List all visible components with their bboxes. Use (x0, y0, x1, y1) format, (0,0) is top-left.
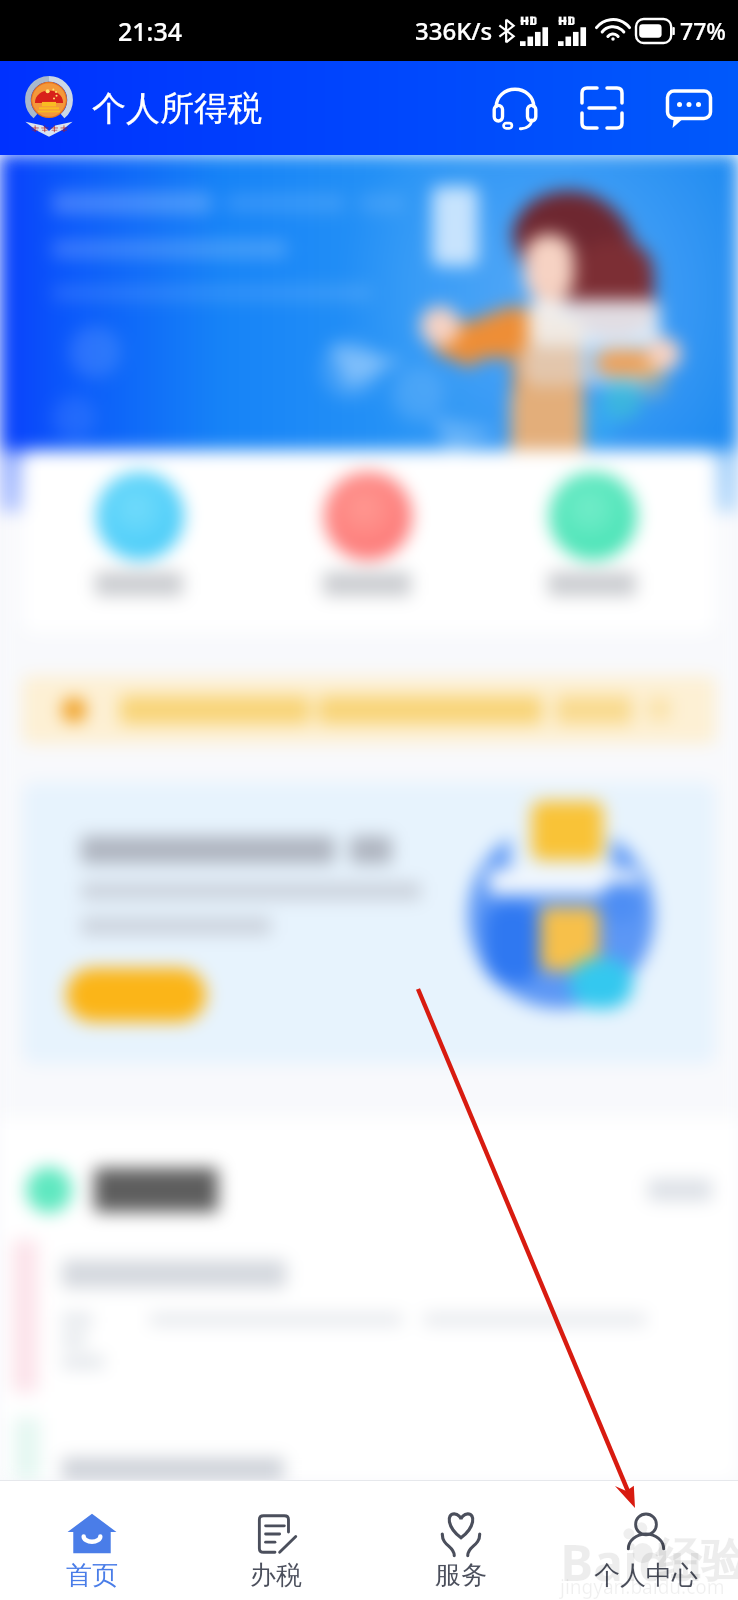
button[interactable]: 首页 (0, 1483, 184, 1598)
button[interactable]: 个人中心 (553, 1483, 738, 1598)
staticText: 个人所得税 (92, 87, 262, 130)
staticText: 办税 (250, 1559, 302, 1592)
staticText: 336K/s (415, 14, 493, 47)
button[interactable] (22, 676, 716, 744)
staticText: 21:34 (118, 14, 183, 48)
button[interactable] (549, 450, 637, 538)
staticText: 个人中心 (594, 1559, 698, 1592)
staticText: jingyan.baidu.com (560, 1574, 725, 1600)
staticText: 经验 (655, 1532, 738, 1590)
button[interactable]: Messages (652, 71, 726, 145)
button[interactable] (0, 1154, 738, 1226)
button[interactable]: 服务 (368, 1483, 553, 1598)
button[interactable] (66, 968, 206, 1022)
button[interactable] (324, 450, 412, 538)
button[interactable]: Customer service (478, 71, 552, 145)
button[interactable]: Scan code (565, 71, 639, 145)
staticText: Baidu (560, 1528, 703, 1596)
button[interactable]: 办税 (184, 1483, 368, 1598)
staticText: 首页 (66, 1559, 118, 1592)
staticText: 服务 (435, 1559, 487, 1592)
button[interactable] (96, 450, 184, 538)
button[interactable] (22, 782, 716, 1064)
staticText: 77% (680, 15, 726, 46)
